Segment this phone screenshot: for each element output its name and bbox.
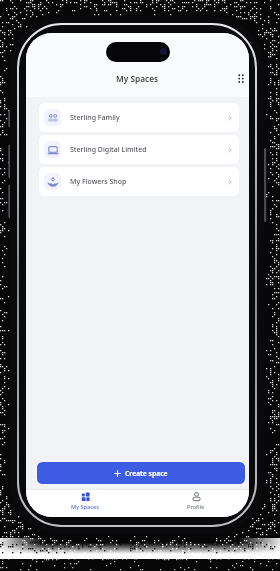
staticText: Create space [125,469,168,478]
staticText: My Spaces [71,503,99,511]
staticText: My Flowers Shop [70,177,127,187]
button[interactable]: Sterling Digital Limited [39,135,239,164]
button[interactable]: My Flowers Shop [39,167,239,196]
staticText: Sterling Digital Limited [70,145,147,155]
staticText: Profile [187,503,205,511]
button[interactable]: Profile [176,492,216,511]
staticText: My Spaces [116,73,159,84]
button[interactable]: My Spaces [65,492,105,511]
button[interactable]: Create space [37,462,245,484]
staticText: Sterling Family [70,113,120,123]
button[interactable] [234,72,247,85]
button[interactable]: Sterling Family [39,103,239,132]
